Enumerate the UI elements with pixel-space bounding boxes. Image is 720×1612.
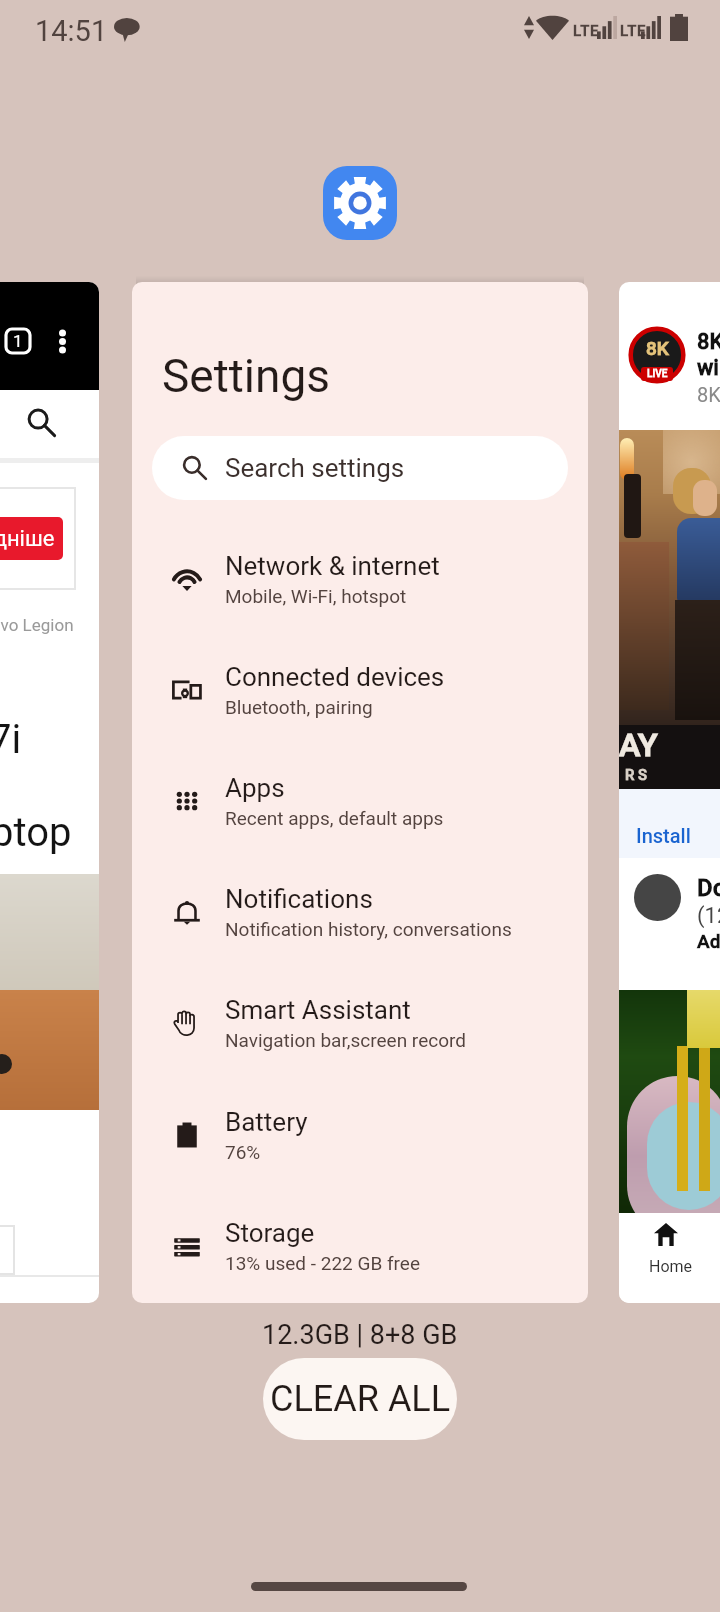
staticText: Network & internet bbox=[225, 551, 440, 581]
staticText: (12+ bbox=[697, 903, 720, 929]
button[interactable]: Apps bbox=[132, 753, 588, 848]
staticText: wild bbox=[697, 355, 720, 381]
staticText: Apps bbox=[225, 773, 285, 803]
staticText: 8K bbox=[646, 337, 669, 359]
button[interactable]: 8K bbox=[619, 282, 720, 1303]
staticText: Notifications bbox=[225, 884, 373, 914]
button[interactable]: Connected devices bbox=[132, 642, 588, 737]
staticText: Install bbox=[636, 824, 691, 847]
staticText: Home bbox=[649, 1257, 693, 1276]
button[interactable]: Notifications bbox=[132, 864, 588, 959]
button[interactable]: CLEAR ALL bbox=[263, 1358, 457, 1440]
button[interactable]: Network & internet bbox=[132, 531, 588, 626]
staticText: 14:51 bbox=[35, 14, 108, 48]
staticText: R S bbox=[625, 766, 648, 784]
staticText: 76% bbox=[225, 1141, 261, 1163]
staticText: 1 bbox=[13, 331, 23, 351]
staticText: Storage bbox=[225, 1218, 315, 1248]
staticText: CLEAR ALL bbox=[270, 1378, 451, 1420]
button[interactable]: Storage bbox=[132, 1198, 588, 1293]
staticText: 8K bbox=[697, 329, 720, 355]
staticText: Mobile, Wi-Fi, hotspot bbox=[225, 585, 407, 607]
button[interactable]: Battery bbox=[132, 1087, 588, 1182]
staticText: Smart Assistant bbox=[225, 995, 411, 1025]
staticText: Ad bbox=[697, 930, 720, 952]
staticText: ptop bbox=[0, 809, 72, 856]
staticText: LTE bbox=[620, 22, 647, 40]
staticText: Recent apps, default apps bbox=[225, 807, 444, 829]
button[interactable]: Search settings bbox=[152, 436, 568, 500]
staticText: надніше bbox=[0, 526, 55, 552]
staticText: Settings bbox=[162, 349, 330, 403]
staticText: Navigation bar,screen record bbox=[225, 1029, 466, 1051]
staticText: 8K T bbox=[697, 383, 720, 406]
staticText: 13% used - 222 GB free bbox=[225, 1252, 420, 1274]
button[interactable]: Smart Assistant bbox=[132, 975, 588, 1070]
staticText: ovo Legion bbox=[0, 615, 74, 635]
staticText: Notification history, conversations bbox=[225, 918, 512, 940]
staticText: 7i bbox=[0, 716, 22, 763]
staticText: Doo bbox=[697, 874, 720, 902]
staticText: LIVE bbox=[647, 368, 668, 380]
button[interactable]: Settings app bbox=[323, 166, 397, 240]
staticText: LTE bbox=[573, 22, 600, 40]
button[interactable]: 1 bbox=[0, 282, 99, 1303]
staticText: Bluetooth, pairing bbox=[225, 696, 373, 718]
staticText: AY bbox=[619, 726, 658, 764]
staticText: Battery bbox=[225, 1107, 308, 1137]
staticText: Search settings bbox=[225, 453, 405, 483]
button[interactable]: Settings bbox=[132, 282, 588, 1303]
staticText: Connected devices bbox=[225, 662, 445, 692]
staticText: 12.3GB | 8+8 GB bbox=[262, 1319, 458, 1351]
